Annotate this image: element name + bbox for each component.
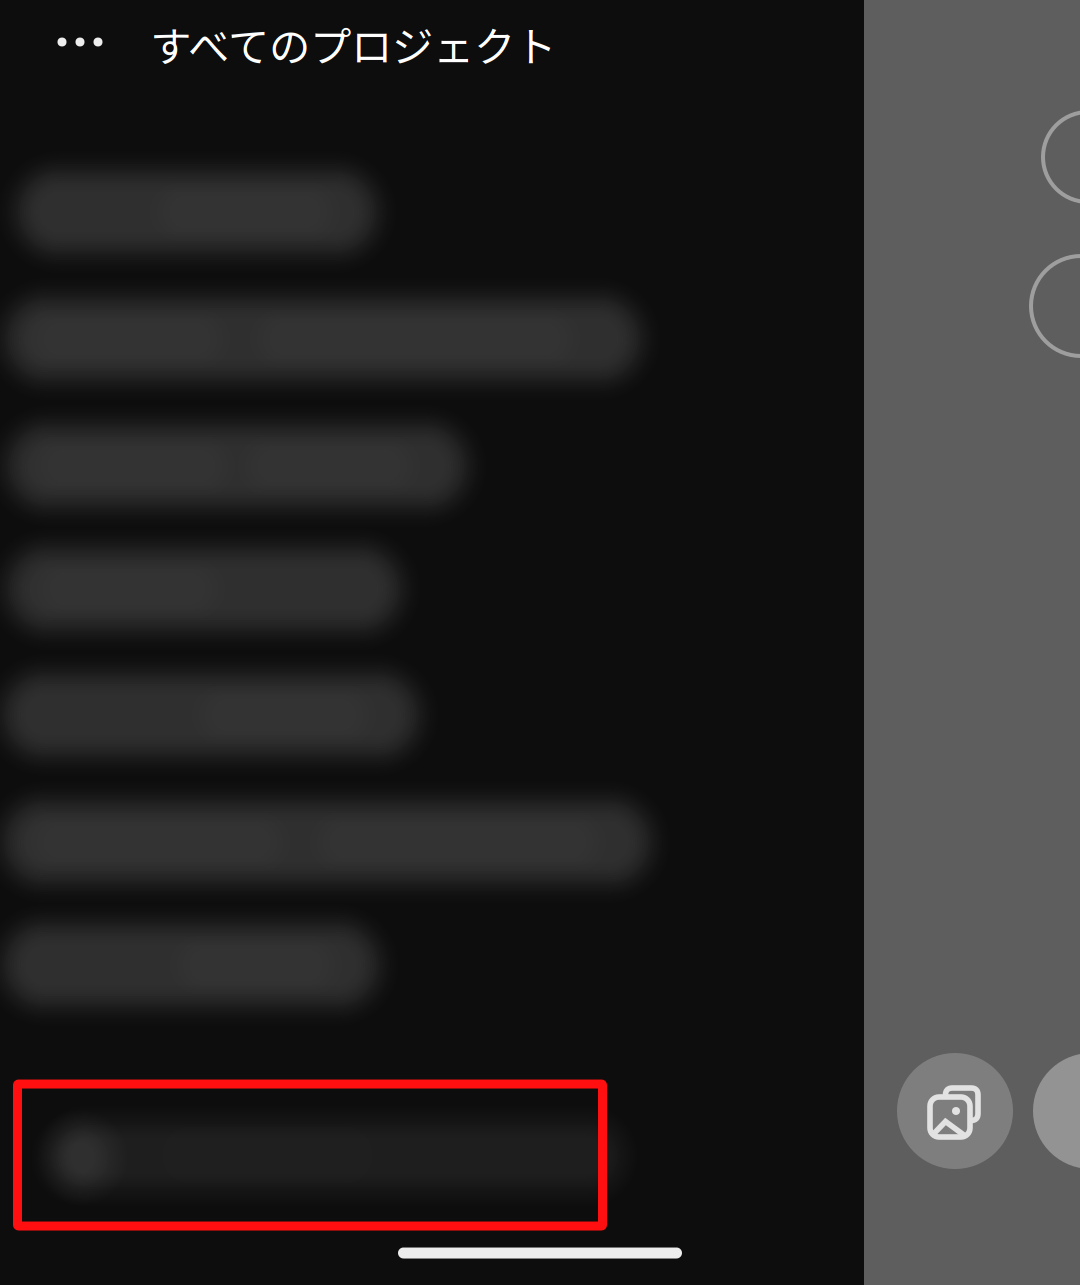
button[interactable]: Project 7 [0,0,1080,1285]
button[interactable]: Project 4 [0,0,1080,1285]
button[interactable]: Project 5 [0,0,1080,1285]
staticText: すべてのプロジェクト [150,14,556,74]
button[interactable]: More options [34,0,126,84]
button[interactable]: Project 3 [0,0,1080,1285]
button[interactable]: Project 2 [0,0,1080,1285]
button[interactable]: Media [897,1053,1013,1169]
button[interactable]: Project 6 [0,0,1080,1285]
button[interactable]: Account [17,1084,602,1226]
button[interactable]: Add [1033,1053,1080,1169]
button[interactable]: Project 1 [0,0,1080,1285]
